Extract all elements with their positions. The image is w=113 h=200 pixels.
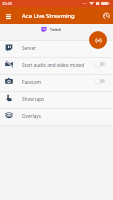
staticText: Server (22, 45, 36, 51)
button[interactable]: Server (0, 41, 113, 57)
staticText: Twitch (50, 27, 62, 32)
button[interactable]: Facecam toggle (95, 78, 105, 84)
button[interactable]: Show taps (0, 92, 113, 108)
button[interactable]: Start streaming (89, 31, 107, 49)
button[interactable]: Menu (1, 9, 15, 23)
button[interactable]: Start audio and video muted toggle (95, 61, 105, 67)
staticText: Start audio and video muted (22, 62, 85, 68)
staticText: Ace Live Streaming (22, 12, 75, 20)
staticText: Facecam (22, 79, 42, 85)
button[interactable]: Start audio and video muted (0, 58, 113, 74)
button[interactable]: Facecam (0, 75, 113, 91)
button[interactable]: History (100, 9, 113, 22)
button[interactable]: Twitch (41, 26, 62, 32)
staticText: Show taps (22, 96, 45, 102)
staticText: Overlays (22, 113, 41, 119)
button[interactable]: Overlays (0, 109, 113, 125)
staticText: 20:05 (2, 1, 13, 6)
